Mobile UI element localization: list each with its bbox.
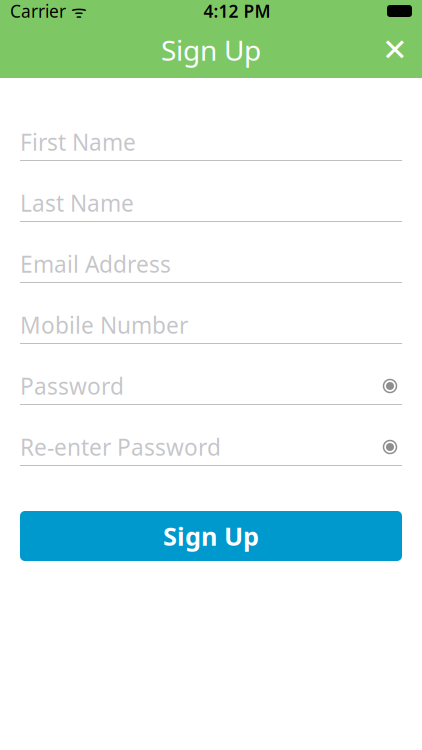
button[interactable]: Re-enter Password xyxy=(20,429,402,466)
button[interactable]: Sign Up xyxy=(20,511,402,561)
button[interactable]: Email Address xyxy=(20,246,402,283)
staticText: Password xyxy=(20,371,124,401)
staticText: Carrier ᯤ xyxy=(10,0,87,22)
staticText: Mobile Number xyxy=(20,310,188,340)
staticText: Re-enter Password xyxy=(20,432,221,462)
button[interactable]: Close xyxy=(368,24,422,76)
staticText: Last Name xyxy=(20,188,134,218)
button[interactable]: Last Name xyxy=(20,185,402,222)
button[interactable]: Show Re-enter Password xyxy=(378,436,402,458)
staticText: 4:12 PM xyxy=(203,0,270,22)
button[interactable]: Mobile Number xyxy=(20,307,402,344)
button[interactable]: Password xyxy=(20,368,402,405)
staticText: First Name xyxy=(20,127,136,157)
staticText: Sign Up xyxy=(161,31,261,69)
staticText: Email Address xyxy=(20,249,171,279)
button[interactable]: First Name xyxy=(20,124,402,161)
staticText: Sign Up xyxy=(163,519,259,553)
staticText: ✕ xyxy=(382,33,408,67)
button[interactable]: Show Password xyxy=(378,375,402,397)
